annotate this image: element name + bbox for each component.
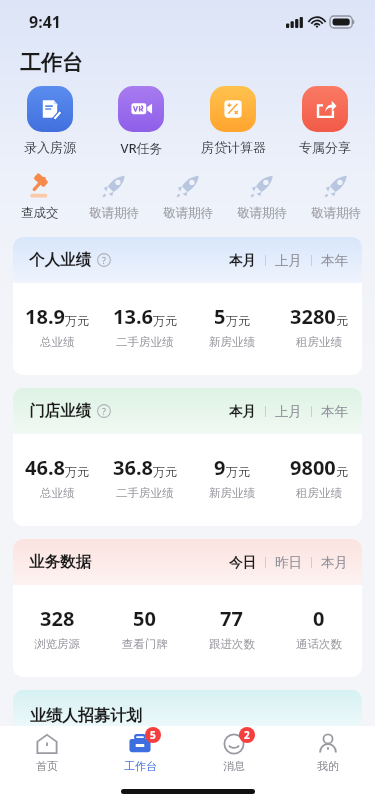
staticText: 二手房业绩: [116, 486, 174, 500]
button[interactable]: 房贷计算器: [187, 84, 279, 157]
button[interactable]: 帮助: [97, 253, 111, 267]
staticText: 9: [214, 454, 226, 481]
staticText: 0: [313, 605, 325, 632]
staticText: 2: [244, 728, 250, 742]
staticText: 5: [214, 303, 226, 330]
staticText: 元: [336, 313, 348, 328]
staticText: 工作台: [20, 50, 83, 76]
staticText: 新房业绩: [209, 486, 255, 500]
button[interactable]: 录入房源: [4, 84, 95, 157]
staticText: 业务数据: [29, 552, 91, 572]
staticText: 万元: [65, 313, 89, 328]
button[interactable]: 敬请期待: [225, 171, 299, 221]
staticText: 46.8: [25, 454, 65, 481]
staticText: 查成交: [21, 205, 59, 221]
staticText: 3280: [290, 303, 336, 330]
other: 敬请期待: [247, 171, 277, 201]
staticText: 业绩人招募计划: [30, 706, 142, 726]
staticText: 我的: [317, 759, 339, 773]
staticText: 敬请期待: [163, 205, 213, 221]
other: 敬请期待: [99, 171, 129, 201]
button[interactable]: 帮助: [97, 404, 111, 418]
button[interactable]: 今日: [229, 554, 256, 571]
staticText: 元: [336, 464, 348, 479]
staticText: 房贷计算器: [201, 139, 266, 155]
staticText: 50: [133, 605, 156, 632]
staticText: 18.9: [25, 303, 65, 330]
staticText: 9:41: [29, 11, 61, 33]
button[interactable]: 本年: [321, 403, 348, 420]
staticText: 77: [220, 605, 243, 632]
staticText: 总业绩: [40, 486, 75, 500]
button[interactable]: 上月: [275, 252, 302, 269]
staticText: 万元: [153, 464, 177, 479]
staticText: 跟进次数: [209, 637, 255, 651]
staticText: 敬请期待: [89, 205, 139, 221]
staticText: VR任务: [120, 139, 163, 157]
button[interactable]: 我的: [281, 726, 375, 778]
staticText: 328: [40, 605, 75, 632]
staticText: 二手房业绩: [116, 335, 174, 349]
button[interactable]: 查成交: [2, 171, 77, 221]
button[interactable]: 本年: [321, 252, 348, 269]
staticText: 录入房源: [24, 139, 76, 155]
staticText: ?: [102, 254, 106, 266]
button[interactable]: 本月: [229, 252, 256, 269]
staticText: 浏览房源: [34, 637, 80, 651]
button[interactable]: 2: [187, 726, 281, 778]
staticText: 个人业绩: [29, 250, 91, 270]
staticText: 36.8: [113, 454, 153, 481]
button[interactable]: 敬请期待: [299, 171, 373, 221]
staticText: 租房业绩: [296, 486, 342, 500]
button[interactable]: 敬请期待: [151, 171, 225, 221]
staticText: 总业绩: [40, 335, 75, 349]
button[interactable]: 首页: [0, 726, 93, 778]
staticText: 万元: [226, 313, 250, 328]
other: 查成交: [25, 171, 55, 201]
button[interactable]: 上月: [275, 403, 302, 420]
button[interactable]: 个人业绩: [13, 237, 362, 375]
button[interactable]: VR任务: [95, 84, 187, 159]
staticText: 查看门牌: [122, 637, 168, 651]
button[interactable]: 业务数据: [13, 539, 362, 677]
button[interactable]: 业绩人招募计划: [13, 690, 362, 730]
staticText: 万元: [226, 464, 250, 479]
staticText: 敬请期待: [311, 205, 361, 221]
staticText: 首页: [36, 759, 58, 773]
button[interactable]: 本月: [321, 554, 348, 571]
staticText: 工作台: [124, 759, 157, 773]
staticText: 门店业绩: [29, 401, 91, 421]
staticText: 万元: [65, 464, 89, 479]
button[interactable]: 本月: [229, 403, 256, 420]
button[interactable]: 昨日: [275, 554, 302, 571]
staticText: 租房业绩: [296, 335, 342, 349]
staticText: 新房业绩: [209, 335, 255, 349]
button[interactable]: 敬请期待: [77, 171, 151, 221]
staticText: 专属分享: [299, 139, 351, 155]
staticText: 万元: [153, 313, 177, 328]
staticText: 通话次数: [296, 637, 342, 651]
staticText: 13.6: [113, 303, 153, 330]
staticText: ?: [102, 405, 106, 417]
button[interactable]: 专属分享: [279, 84, 371, 157]
staticText: 9800: [290, 454, 336, 481]
staticText: 敬请期待: [237, 205, 287, 221]
staticText: 5: [150, 728, 156, 742]
other: 敬请期待: [321, 171, 351, 201]
other: 敬请期待: [173, 171, 203, 201]
staticText: 消息: [223, 759, 245, 773]
button[interactable]: 门店业绩: [13, 388, 362, 526]
button[interactable]: 5: [93, 726, 187, 778]
